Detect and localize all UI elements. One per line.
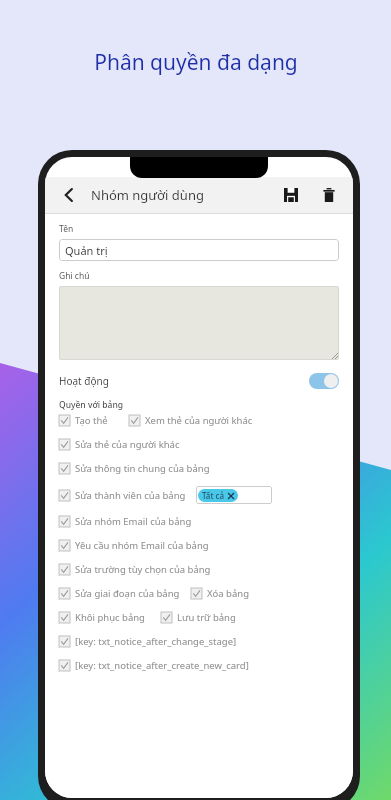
staticText: Xem thẻ của người khác (145, 414, 253, 427)
button[interactable]: [key: txt_notice_after_change_stage] (59, 635, 237, 648)
button[interactable]: Save (277, 181, 305, 209)
button[interactable]: Sửa thẻ của người khác (59, 438, 180, 451)
staticText: Quản trị (65, 243, 108, 258)
staticText: [key: txt_notice_after_change_stage] (75, 635, 237, 648)
button[interactable]: Yêu cầu nhóm Email của bảng (59, 539, 209, 552)
button[interactable]: Khôi phục bảng (59, 611, 161, 624)
staticText: Lưu trữ bảng (177, 611, 236, 624)
button[interactable]: Sửa thành viên của bảng (59, 486, 339, 504)
button[interactable]: Back (55, 181, 83, 209)
button[interactable]: Xóa bảng (191, 587, 249, 600)
staticText: Tạo thẻ (75, 414, 108, 427)
button[interactable] (59, 286, 339, 360)
button[interactable]: Quản trị (59, 239, 339, 261)
button[interactable]: Sửa giai đoạn của bảng (59, 587, 191, 600)
staticText: Sửa nhóm Email của bảng (75, 515, 192, 528)
staticText: Sửa thông tin chung của bảng (75, 462, 210, 475)
staticText: Sửa thành viên của bảng (75, 489, 186, 502)
staticText: Ghi chú (59, 270, 90, 282)
button[interactable]: Sửa nhóm Email của bảng (59, 515, 192, 528)
button[interactable]: Sửa thông tin chung của bảng (59, 462, 210, 475)
staticText: Yêu cầu nhóm Email của bảng (75, 539, 209, 552)
button[interactable]: Sửa trường tùy chọn của bảng (59, 563, 211, 576)
staticText: Khôi phục bảng (75, 611, 145, 624)
button[interactable]: Lưu trữ bảng (161, 611, 236, 624)
staticText: Sửa trường tùy chọn của bảng (75, 563, 211, 576)
staticText: Tất cả (202, 490, 225, 501)
button[interactable]: Tạo thẻ (59, 414, 129, 427)
button[interactable]: Delete (315, 181, 343, 209)
staticText: Sửa thẻ của người khác (75, 438, 180, 451)
staticText: Nhóm người dùng (91, 186, 204, 204)
staticText: [key: txt_notice_after_create_new_card] (75, 659, 249, 672)
staticText: Tên (59, 223, 74, 235)
button[interactable]: Hoạt động (59, 371, 339, 391)
staticText: Xóa bảng (207, 587, 249, 600)
button[interactable]: Tất cả (198, 489, 238, 502)
button[interactable]: [key: txt_notice_after_create_new_card] (59, 659, 249, 672)
staticText: Quyền với bảng (59, 399, 124, 411)
staticText: Phân quyền đa dạng (94, 48, 298, 77)
button[interactable]: Xem thẻ của người khác (129, 414, 253, 427)
button[interactable]: Tất cả (196, 486, 272, 504)
staticText: Sửa giai đoạn của bảng (75, 587, 180, 600)
staticText: Hoạt động (59, 374, 109, 388)
